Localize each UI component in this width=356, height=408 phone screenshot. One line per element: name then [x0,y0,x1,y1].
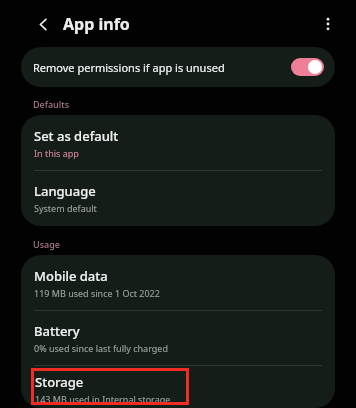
button[interactable]: Set as default [21,119,335,167]
staticText: 143 MB used in Internal storage [35,393,171,405]
staticText: In this app [34,147,79,159]
staticText: Mobile data [34,267,108,285]
staticText: Defaults [33,98,70,110]
staticText: Set as default [34,127,119,145]
button[interactable]: Remove permissions if app is unused togg… [291,58,324,76]
staticText: System default [34,202,97,214]
staticText: Remove permissions if app is unused [33,60,291,75]
staticText: Battery [34,322,80,340]
button[interactable]: Storage [31,368,189,405]
staticText: Language [34,182,96,200]
button[interactable]: Battery [21,314,335,362]
staticText: App info [63,13,130,35]
button[interactable]: Back [30,11,56,37]
button[interactable]: Remove permissions if app is unused [21,47,335,87]
button[interactable]: Mobile data [21,259,335,307]
staticText: Usage [33,238,60,250]
staticText: Storage [35,373,84,391]
button[interactable]: Language [21,174,335,222]
button[interactable]: More options [311,7,345,41]
staticText: 0% used since last fully charged [34,342,168,354]
staticText: 119 MB used since 1 Oct 2022 [34,287,160,299]
